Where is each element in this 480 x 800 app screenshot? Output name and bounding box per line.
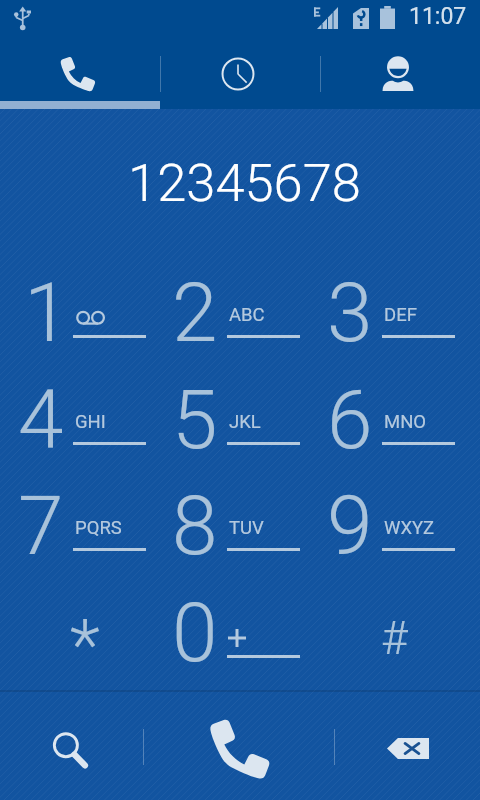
button[interactable]: # (317, 579, 472, 686)
button[interactable]: 8 (162, 472, 317, 579)
staticText: TUV (229, 517, 264, 539)
button[interactable]: 9 (317, 472, 472, 579)
button[interactable]: Call (160, 690, 320, 800)
staticText: 11:07 (409, 3, 467, 30)
button[interactable]: 3 (317, 259, 472, 366)
staticText: ABC (229, 304, 265, 326)
button[interactable]: 6 (317, 366, 472, 473)
staticText: 6 (327, 372, 373, 468)
staticText: WXYZ (384, 517, 435, 539)
button[interactable]: 5 (162, 366, 317, 473)
button[interactable]: 4 (8, 366, 162, 473)
staticText: 0 (172, 585, 218, 681)
button[interactable]: Contacts (320, 32, 480, 109)
staticText: * (70, 604, 100, 686)
button[interactable]: 2 (162, 259, 317, 366)
staticText: 9 (327, 478, 373, 574)
staticText: 7 (18, 478, 64, 574)
staticText: GHI (75, 411, 106, 433)
staticText: 2 (172, 265, 218, 361)
button[interactable]: Dialer (0, 32, 160, 109)
staticText: MNO (384, 411, 427, 433)
button[interactable]: Search (0, 690, 160, 800)
button[interactable]: 0 (162, 579, 317, 686)
button[interactable]: Delete (320, 690, 480, 800)
button[interactable]: * (8, 579, 162, 686)
staticText: PQRS (75, 517, 122, 539)
staticText: 5 (172, 372, 218, 468)
staticText: 3 (327, 265, 373, 361)
button[interactable]: 7 (8, 472, 162, 579)
staticText: 4 (18, 372, 64, 468)
staticText: 8 (172, 478, 218, 574)
staticText: # (381, 611, 408, 665)
staticText: 1 (24, 265, 70, 361)
staticText: JKL (229, 411, 261, 433)
staticText: DEF (384, 304, 417, 326)
staticText: 12345678 (128, 152, 361, 214)
button[interactable]: Call history (160, 32, 320, 109)
button[interactable]: 1 (8, 259, 162, 366)
